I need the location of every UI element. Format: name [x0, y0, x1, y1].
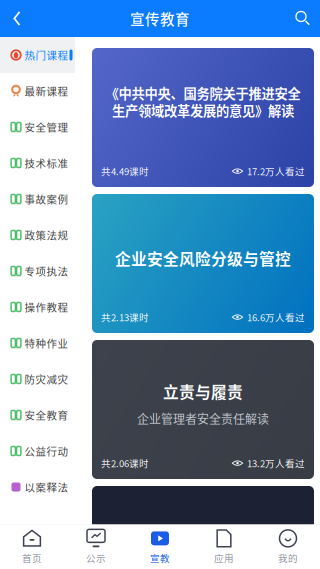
staticText: 企业管理者安全责任解读 [137, 410, 269, 427]
button[interactable]: 政策法规 [0, 217, 86, 253]
staticText: 应用 [214, 551, 234, 565]
staticText: 16.6万人看过 [247, 310, 305, 324]
staticText: 13.2万人看过 [247, 456, 305, 470]
button[interactable]: 公益行动 [0, 433, 86, 469]
staticText: 共2.06课时 [101, 456, 149, 470]
button[interactable]: 企业安全风险分级与管控 [92, 194, 314, 333]
button[interactable]: 操作教程 [0, 289, 86, 325]
staticText: 共4.49课时 [101, 164, 149, 178]
staticText: 操作教程 [24, 299, 68, 315]
button[interactable]: 公示 [64, 524, 128, 569]
staticText: 以案释法 [24, 479, 68, 495]
button[interactable]: 以案释法 [0, 469, 86, 505]
staticText: 公益行动 [24, 443, 68, 459]
button[interactable]: 立责与履责 [92, 340, 314, 479]
button[interactable]: 安全管理 [0, 109, 86, 145]
staticText: 宣教 [150, 551, 170, 565]
staticText: 专项执法 [24, 263, 68, 279]
staticText: 共2.13课时 [101, 310, 149, 324]
staticText: 我的 [278, 551, 298, 565]
button[interactable]: 技术标准 [0, 145, 86, 181]
button[interactable]: 首页 [0, 524, 64, 569]
staticText: 公示 [86, 551, 106, 565]
staticText: 立责与履责 [163, 380, 243, 403]
button[interactable]: 宣教 [128, 524, 192, 569]
button[interactable]: 应用 [192, 524, 256, 569]
staticText: 政策法规 [24, 227, 68, 243]
staticText: 《中共中央、国务院关于推进安全 [105, 83, 300, 103]
button[interactable]: 特种作业 [0, 325, 86, 361]
staticText: 最新课程 [24, 83, 68, 99]
staticText: 安全教育 [24, 407, 68, 423]
staticText: 事故案例 [24, 191, 68, 207]
staticText: 宣传教育 [130, 8, 190, 29]
button[interactable]: 我的 [256, 524, 320, 569]
button[interactable]: 专项执法 [0, 253, 86, 289]
button[interactable]: Back [0, 0, 34, 37]
staticText: 生产领域改革发展的意见》解读 [112, 101, 294, 120]
button[interactable]: Search [286, 0, 320, 37]
button[interactable]: 事故案例 [0, 181, 86, 217]
staticText: 防灾减灾 [24, 371, 68, 387]
button[interactable]: 《中共中央、国务院关于推进安全 [92, 48, 314, 187]
staticText: 17.2万人看过 [247, 164, 305, 178]
staticText: 首页 [22, 551, 42, 565]
button[interactable]: 热门课程 [0, 37, 86, 73]
button[interactable]: 防灾减灾 [0, 361, 86, 397]
staticText: 特种作业 [24, 335, 68, 351]
staticText: 热门课程 [24, 47, 68, 63]
staticText: 企业安全风险分级与管控 [115, 247, 291, 269]
staticText: 安全管理 [24, 119, 68, 135]
staticText: 技术标准 [24, 155, 68, 171]
button[interactable]: 安全教育 [0, 397, 86, 433]
button[interactable]: 最新课程 [0, 73, 86, 109]
